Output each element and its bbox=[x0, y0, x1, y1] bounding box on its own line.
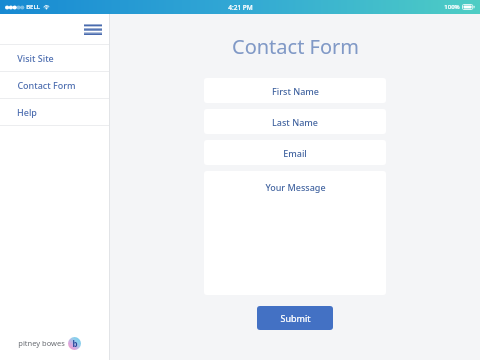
button[interactable]: Help bbox=[0, 99, 110, 125]
staticText: Contact Form bbox=[232, 33, 359, 60]
staticText: First Name bbox=[272, 85, 319, 97]
staticText: b bbox=[72, 338, 78, 349]
staticText: Email bbox=[283, 147, 307, 159]
staticText: Submit bbox=[280, 312, 311, 324]
staticText: pitney bowes bbox=[18, 338, 65, 348]
button[interactable]: Last Name bbox=[204, 109, 386, 134]
staticText: Help bbox=[17, 106, 37, 118]
staticText: Contact Form bbox=[17, 79, 76, 91]
button[interactable]: Open navigation menu bbox=[0, 14, 110, 44]
button[interactable]: Visit Site bbox=[0, 45, 110, 71]
button[interactable]: Contact Form bbox=[0, 72, 110, 98]
button[interactable]: Your Message bbox=[204, 171, 386, 295]
button[interactable]: Email bbox=[204, 140, 386, 165]
staticText: Last Name bbox=[272, 116, 318, 128]
button[interactable]: Submit bbox=[257, 306, 333, 330]
staticText: BELL bbox=[26, 3, 40, 11]
button[interactable]: First Name bbox=[204, 78, 386, 103]
staticText: 100% bbox=[444, 3, 460, 11]
staticText: Visit Site bbox=[17, 52, 54, 64]
staticText: 4:21 PM bbox=[228, 3, 253, 12]
staticText: Your Message bbox=[265, 181, 326, 193]
